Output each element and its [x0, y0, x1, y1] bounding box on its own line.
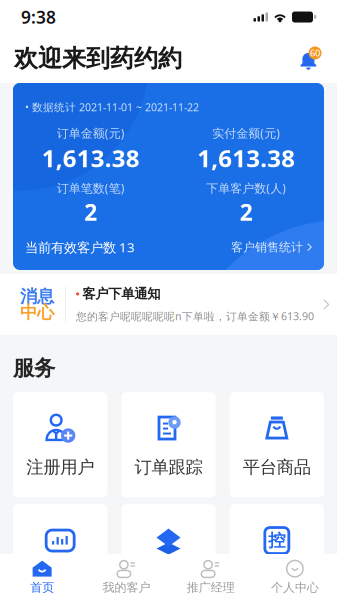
staticText: 2 — [240, 197, 253, 227]
button[interactable]: Notifications — [297, 45, 323, 71]
staticText: 您的客户呢呢呢呢呢n下单啦，订单金额￥613.90 — [76, 309, 314, 323]
staticText: 2 — [84, 197, 97, 227]
button[interactable]: 控 — [230, 504, 324, 600]
staticText: 推广经理 — [187, 580, 235, 595]
staticText: 控销管理 — [243, 569, 311, 590]
staticText: 数据报表 — [26, 569, 94, 590]
staticText: 订单金额(元) — [57, 125, 125, 141]
staticText: 1,613.38 — [42, 142, 140, 174]
staticText: 客户下单通知 — [82, 286, 160, 302]
button[interactable]: 商品分类 — [121, 504, 216, 600]
staticText: 平台商品 — [243, 457, 311, 478]
button[interactable]: 客户销售统计 — [231, 240, 312, 254]
button[interactable]: 平台商品 — [230, 392, 324, 497]
button[interactable]: 订单跟踪 — [121, 392, 216, 497]
staticText: 实付金额(元) — [212, 125, 280, 141]
button[interactable]: 我的客户 — [84, 554, 168, 600]
staticText: 当前有效客户数 13 — [25, 238, 135, 256]
button[interactable]: 个人中心 — [253, 554, 337, 600]
staticText: 订单笔数(笔) — [57, 180, 125, 196]
staticText: 欢迎来到药约約 — [14, 44, 182, 73]
button[interactable]: 推广经理 — [168, 554, 253, 600]
staticText: 下单客户数(人) — [206, 180, 286, 196]
button[interactable]: 数据报表 — [13, 504, 107, 600]
staticText: 订单跟踪 — [134, 457, 202, 478]
staticText: 中心 — [20, 302, 54, 323]
staticText: • 数据统计 2021-11-01 ~ 2021-11-22 — [25, 100, 199, 114]
staticText: 60 — [310, 47, 320, 59]
button[interactable]: 首页 — [0, 554, 84, 600]
staticText: 个人中心 — [271, 580, 319, 595]
staticText: 商品分类 — [134, 569, 202, 590]
staticText: 控 — [268, 530, 285, 551]
staticText: 消息 — [20, 286, 54, 307]
staticText: 1,613.38 — [197, 142, 295, 174]
staticText: 注册用户 — [26, 457, 94, 478]
staticText: 我的客户 — [102, 580, 150, 595]
button[interactable]: 注册用户 — [13, 392, 107, 497]
staticText: 服务 — [13, 355, 55, 381]
button[interactable]: 消息 — [0, 274, 337, 335]
staticText: 9:38 — [21, 5, 56, 28]
staticText: 首页 — [30, 580, 54, 595]
staticText: 客户销售统计 — [231, 240, 303, 254]
